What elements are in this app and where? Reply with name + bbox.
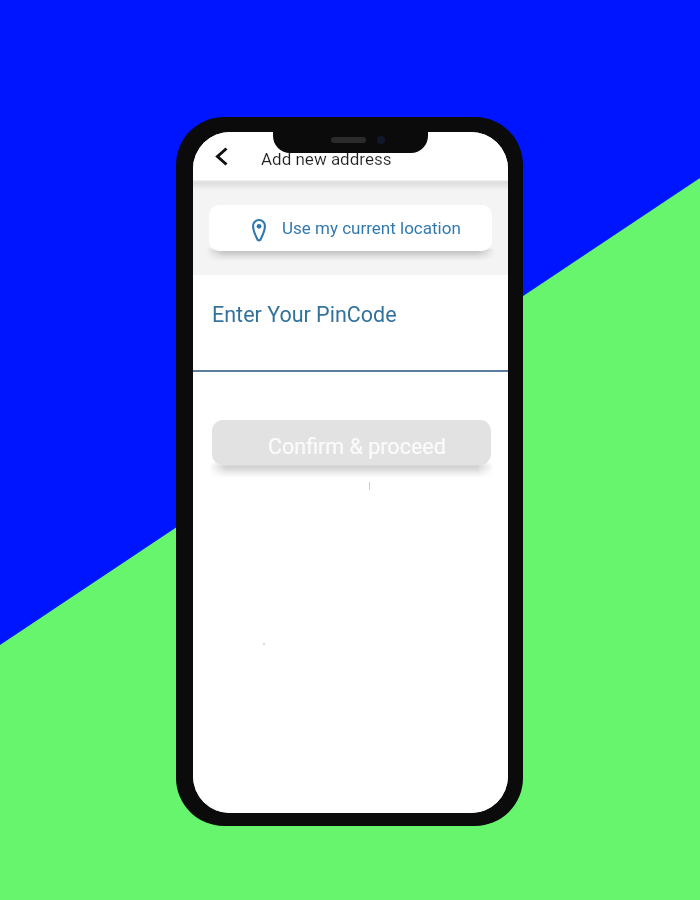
staticText: Use my current location	[282, 218, 461, 238]
button[interactable]: Use my current location	[209, 205, 492, 251]
staticText: Add new address	[261, 149, 392, 169]
button[interactable]: Confirm & proceed	[212, 420, 491, 465]
staticText: Enter Your PinCode	[212, 302, 397, 327]
button[interactable]: Back	[204, 139, 239, 173]
staticText: Confirm & proceed	[268, 434, 446, 459]
